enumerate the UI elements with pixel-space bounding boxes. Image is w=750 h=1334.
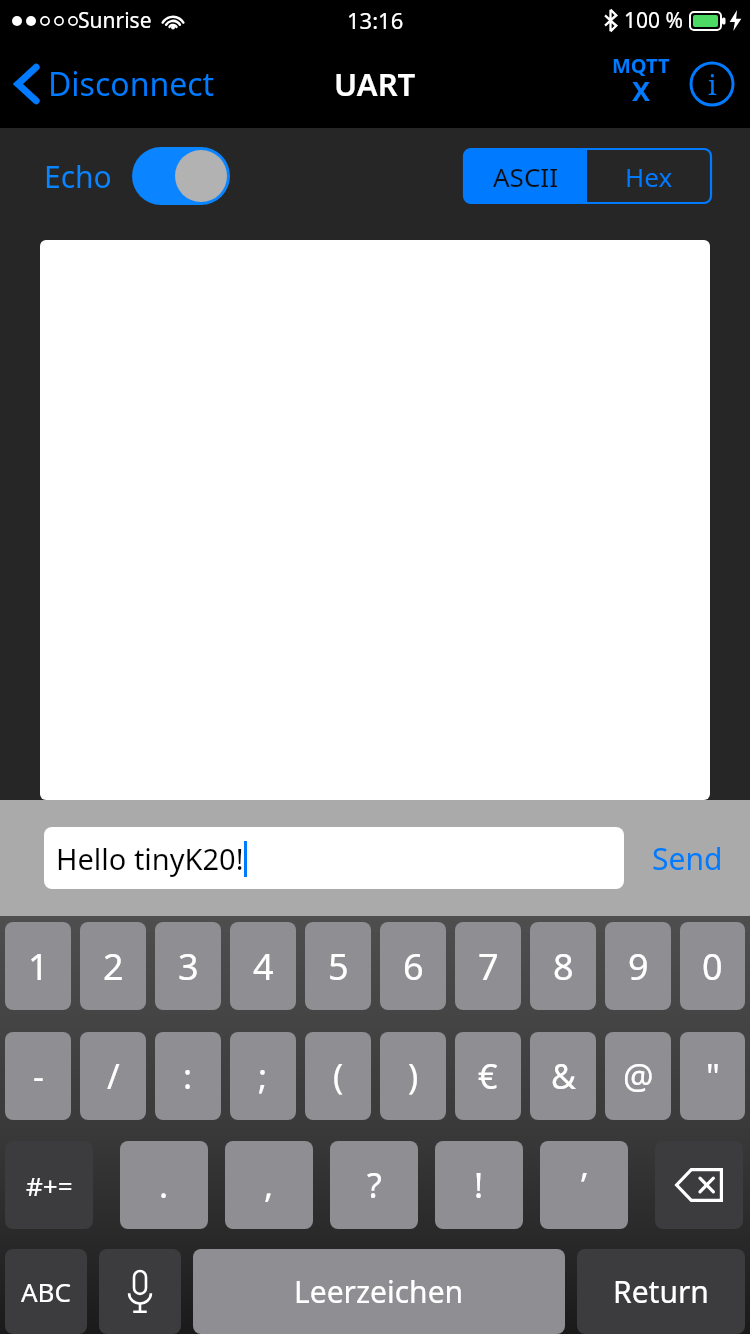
button[interactable]: 6 xyxy=(380,922,446,1010)
button[interactable]: ABC xyxy=(5,1249,87,1334)
staticText: #+= xyxy=(26,1168,73,1203)
button[interactable]: 4 xyxy=(230,922,296,1010)
button[interactable]: Return xyxy=(577,1249,745,1334)
staticText: i xyxy=(708,66,717,103)
staticText: Hex xyxy=(625,159,673,194)
button[interactable]: & xyxy=(530,1032,596,1120)
button[interactable]: #+= xyxy=(5,1141,93,1229)
staticText: Echo xyxy=(44,156,112,197)
staticText: ASCII xyxy=(493,159,558,194)
staticText: 8 xyxy=(553,942,574,991)
staticText: . xyxy=(159,1162,169,1208)
button[interactable]: MQTT X xyxy=(608,52,674,116)
staticText: € xyxy=(478,1053,498,1099)
staticText: / xyxy=(107,1053,120,1099)
staticText: ; xyxy=(258,1053,268,1099)
staticText: Leerzeichen xyxy=(294,1271,464,1312)
button[interactable]: ’ xyxy=(540,1141,628,1229)
staticText: 0 xyxy=(702,942,723,991)
staticText: 3 xyxy=(178,942,199,991)
button[interactable]: ( xyxy=(305,1032,371,1120)
button[interactable]: : xyxy=(155,1032,221,1120)
button[interactable]: 8 xyxy=(530,922,596,1010)
staticText: UART xyxy=(334,63,416,105)
button[interactable]: 7 xyxy=(455,922,521,1010)
staticText: 6 xyxy=(403,942,424,991)
staticText: 9 xyxy=(628,942,649,991)
button[interactable]: 1 xyxy=(5,922,71,1010)
staticText: Sunrise xyxy=(78,6,152,35)
staticText: 100 % xyxy=(624,6,683,35)
button[interactable]: 3 xyxy=(155,922,221,1010)
button[interactable]: , xyxy=(225,1141,313,1229)
button[interactable]: 5 xyxy=(305,922,371,1010)
staticText: ABC xyxy=(21,1274,71,1309)
button[interactable]: @ xyxy=(605,1032,671,1120)
staticText: - xyxy=(33,1053,44,1099)
staticText: ! xyxy=(474,1162,484,1208)
staticText: Disconnect xyxy=(48,62,215,106)
staticText: 7 xyxy=(478,942,499,991)
button[interactable]: Hex xyxy=(587,149,711,203)
staticText: X xyxy=(632,72,651,109)
button[interactable]: Send xyxy=(624,800,750,916)
staticText: 5 xyxy=(328,942,349,991)
staticText: 1 xyxy=(28,942,49,991)
button[interactable]: 9 xyxy=(605,922,671,1010)
button[interactable]: Dictation xyxy=(99,1249,181,1334)
button[interactable]: ; xyxy=(230,1032,296,1120)
button[interactable]: Leerzeichen xyxy=(193,1249,565,1334)
staticText: 2 xyxy=(103,942,124,991)
staticText: ) xyxy=(408,1053,419,1099)
button[interactable]: Hello tinyK20! xyxy=(44,827,624,889)
staticText: ( xyxy=(333,1053,344,1099)
button[interactable]: . xyxy=(120,1141,208,1229)
button[interactable]: ASCII xyxy=(464,149,587,203)
button[interactable]: Disconnect xyxy=(0,62,225,106)
button[interactable]: ! xyxy=(435,1141,523,1229)
button[interactable]: - xyxy=(5,1032,71,1120)
staticText: @ xyxy=(623,1053,654,1099)
staticText: ? xyxy=(367,1162,382,1208)
staticText: " xyxy=(706,1053,720,1099)
button[interactable]: Info xyxy=(688,60,736,108)
staticText: Return xyxy=(613,1271,709,1312)
button[interactable]: ) xyxy=(380,1032,446,1120)
staticText: Send xyxy=(652,838,723,879)
staticText: : xyxy=(183,1053,193,1099)
staticText: ’ xyxy=(581,1162,587,1208)
button[interactable]: ? xyxy=(330,1141,418,1229)
button[interactable]: € xyxy=(455,1032,521,1120)
staticText: MQTT xyxy=(612,52,670,79)
button[interactable]: 0 xyxy=(680,922,745,1010)
staticText: Hello tinyK20! xyxy=(56,839,244,878)
button[interactable]: 2 xyxy=(80,922,146,1010)
staticText: 13:16 xyxy=(347,5,404,35)
button[interactable]: Echo xyxy=(132,147,230,205)
staticText: 4 xyxy=(253,942,274,991)
staticText: , xyxy=(264,1162,274,1208)
button[interactable]: Backspace xyxy=(655,1141,743,1229)
button[interactable]: " xyxy=(680,1032,745,1120)
button[interactable]: / xyxy=(80,1032,146,1120)
staticText: & xyxy=(551,1053,576,1099)
